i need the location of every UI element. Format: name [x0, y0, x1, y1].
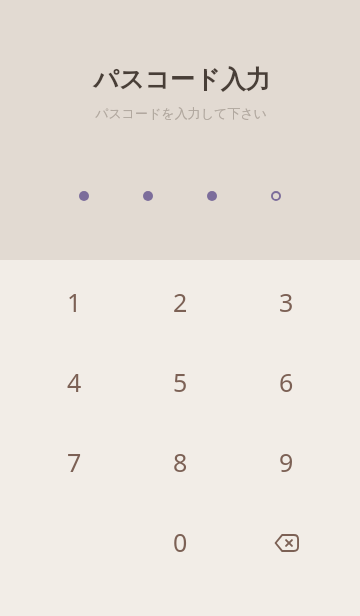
- button[interactable]: 8: [127, 422, 233, 502]
- staticText: 0: [173, 525, 188, 559]
- staticText: 8: [173, 445, 188, 479]
- staticText: 3: [279, 285, 294, 319]
- button[interactable]: 2: [127, 262, 233, 342]
- staticText: パスコード入力: [93, 64, 271, 95]
- button[interactable]: 4: [21, 342, 127, 422]
- staticText: 7: [67, 445, 82, 479]
- staticText: 2: [173, 285, 188, 319]
- button[interactable]: Backspace: [233, 502, 339, 582]
- button[interactable]: 1: [21, 262, 127, 342]
- staticText: 6: [279, 365, 294, 399]
- button[interactable]: 3: [233, 262, 339, 342]
- staticText: 4: [67, 365, 82, 399]
- button[interactable]: 6: [233, 342, 339, 422]
- staticText: 5: [173, 365, 188, 399]
- staticText: パスコードを入力して下さい: [95, 105, 267, 121]
- button[interactable]: 9: [233, 422, 339, 502]
- staticText: 9: [279, 445, 294, 479]
- button[interactable]: 5: [127, 342, 233, 422]
- other: 3 of 4 digits entered: [79, 191, 281, 201]
- staticText: 1: [67, 285, 82, 319]
- button[interactable]: 0: [127, 502, 233, 582]
- button[interactable]: 7: [21, 422, 127, 502]
